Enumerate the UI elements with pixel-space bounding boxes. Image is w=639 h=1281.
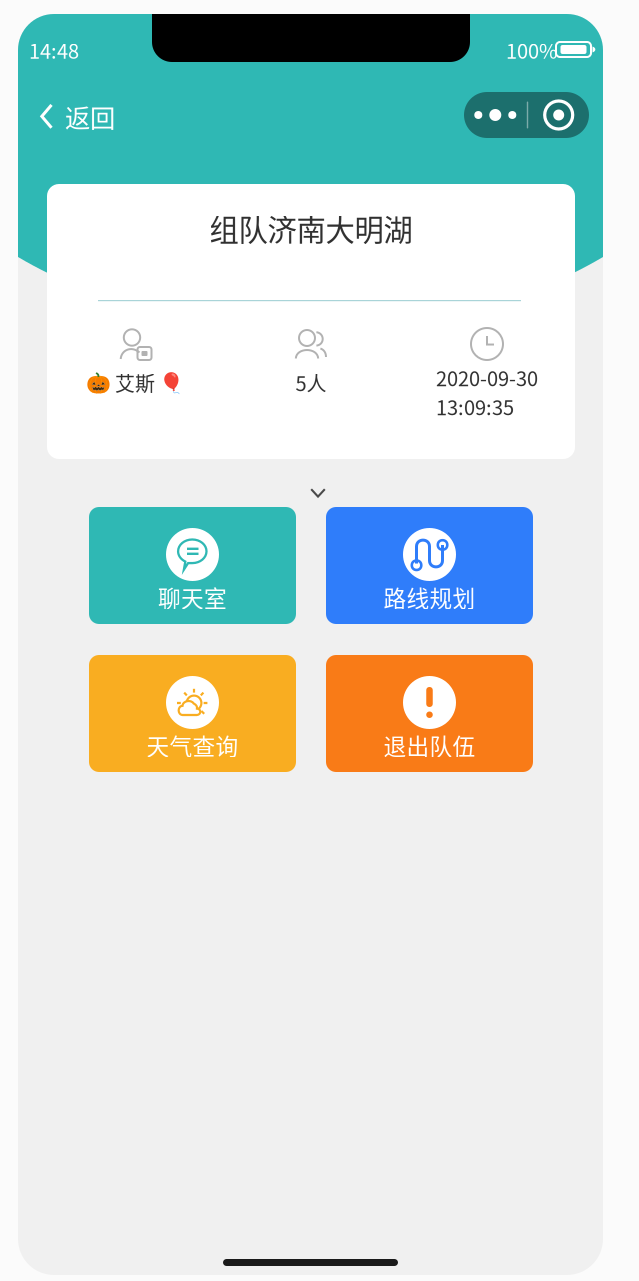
button[interactable]: 天气查询 [89, 655, 296, 772]
staticText: 路线规划 [383, 581, 475, 613]
button[interactable]: 路线规划 [326, 507, 533, 624]
staticText: 返回 [65, 98, 115, 135]
button[interactable]: Menu [464, 92, 589, 138]
staticText: 5人 [295, 368, 326, 397]
button[interactable]: 返回 [32, 90, 123, 143]
staticText: 天气查询 [146, 729, 238, 761]
staticText: 组队济南大明湖 [209, 207, 412, 249]
staticText: 聊天室 [158, 581, 227, 613]
staticText: 100% [506, 35, 557, 64]
button[interactable]: Expand [300, 478, 336, 508]
staticText: 14:48 [29, 35, 79, 64]
button[interactable]: 聊天室 [89, 507, 296, 624]
staticText: 2020-09-30 13:09:35 [436, 363, 538, 421]
staticText: 退出队伍 [383, 729, 475, 761]
button[interactable]: 退出队伍 [326, 655, 533, 772]
staticText: 🎃 艾斯 🎈 [86, 368, 184, 397]
